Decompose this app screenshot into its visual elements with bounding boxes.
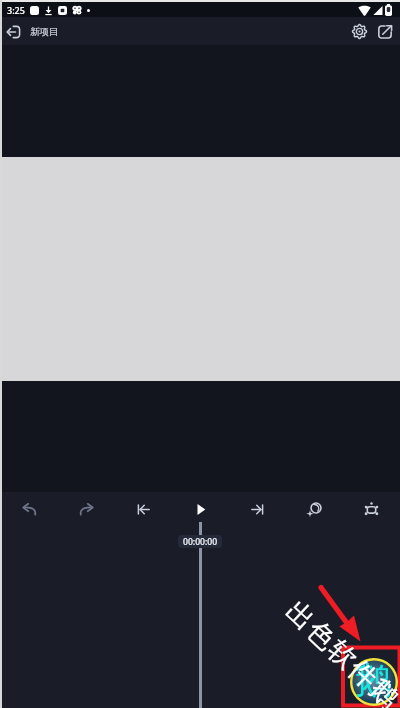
staticText: 新项目 — [30, 26, 59, 38]
button[interactable]: Settings — [346, 19, 372, 44]
button[interactable]: Fullscreen — [343, 490, 400, 528]
button[interactable]: Magic — [286, 490, 343, 528]
staticText: 3:25 — [7, 4, 25, 16]
staticText: 00:00:00 — [183, 536, 218, 548]
button[interactable]: Redo — [58, 490, 115, 528]
staticText: 鹅 — [355, 658, 391, 703]
button[interactable]: Undo — [0, 490, 58, 528]
button[interactable]: Skip to end — [229, 490, 286, 528]
button[interactable]: Play — [172, 490, 229, 528]
button[interactable]: Back — [0, 19, 26, 44]
button[interactable]: Export — [372, 19, 398, 44]
staticText: 出色软件鹅 — [279, 594, 400, 708]
button[interactable]: Skip to start — [115, 490, 172, 528]
